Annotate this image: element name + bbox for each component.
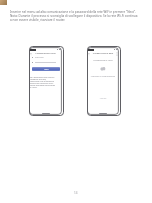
- button[interactable]: Next: [32, 67, 60, 71]
- staticText: Configurazione Rete: [90, 52, 116, 55]
- button[interactable]: Back: [30, 53, 32, 55]
- button[interactable]: More options: [116, 53, 118, 55]
- staticText: Connessione in corso: [88, 59, 118, 62]
- button[interactable]: Back: [88, 53, 90, 55]
- staticText: Casa-WiFi: [35, 56, 44, 58]
- staticText: 14: [74, 191, 78, 195]
- staticText: Inserire nel menu ad alta comunicazione …: [10, 10, 138, 22]
- staticText: Attendere il completamento: [88, 75, 118, 78]
- button[interactable]: Annulla: [88, 97, 118, 99]
- staticText: Se il dispositivo non riesce a collegars…: [30, 76, 56, 88]
- staticText: Configurazione Rete: [32, 52, 59, 55]
- staticText: Next: [44, 68, 49, 71]
